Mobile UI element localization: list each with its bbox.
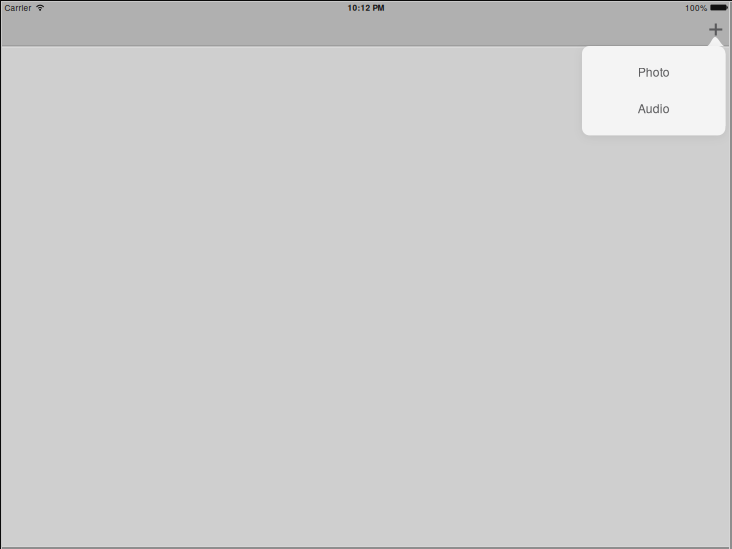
staticText: 100% [685,2,707,13]
button[interactable]: Audio [582,90,725,126]
button[interactable]: Add [701,14,731,44]
staticText: 10:12 PM [347,2,384,13]
button[interactable]: Photo [582,53,725,90]
staticText: Audio [638,99,670,117]
staticText: Carrier [5,2,32,13]
staticText: Photo [638,63,670,80]
